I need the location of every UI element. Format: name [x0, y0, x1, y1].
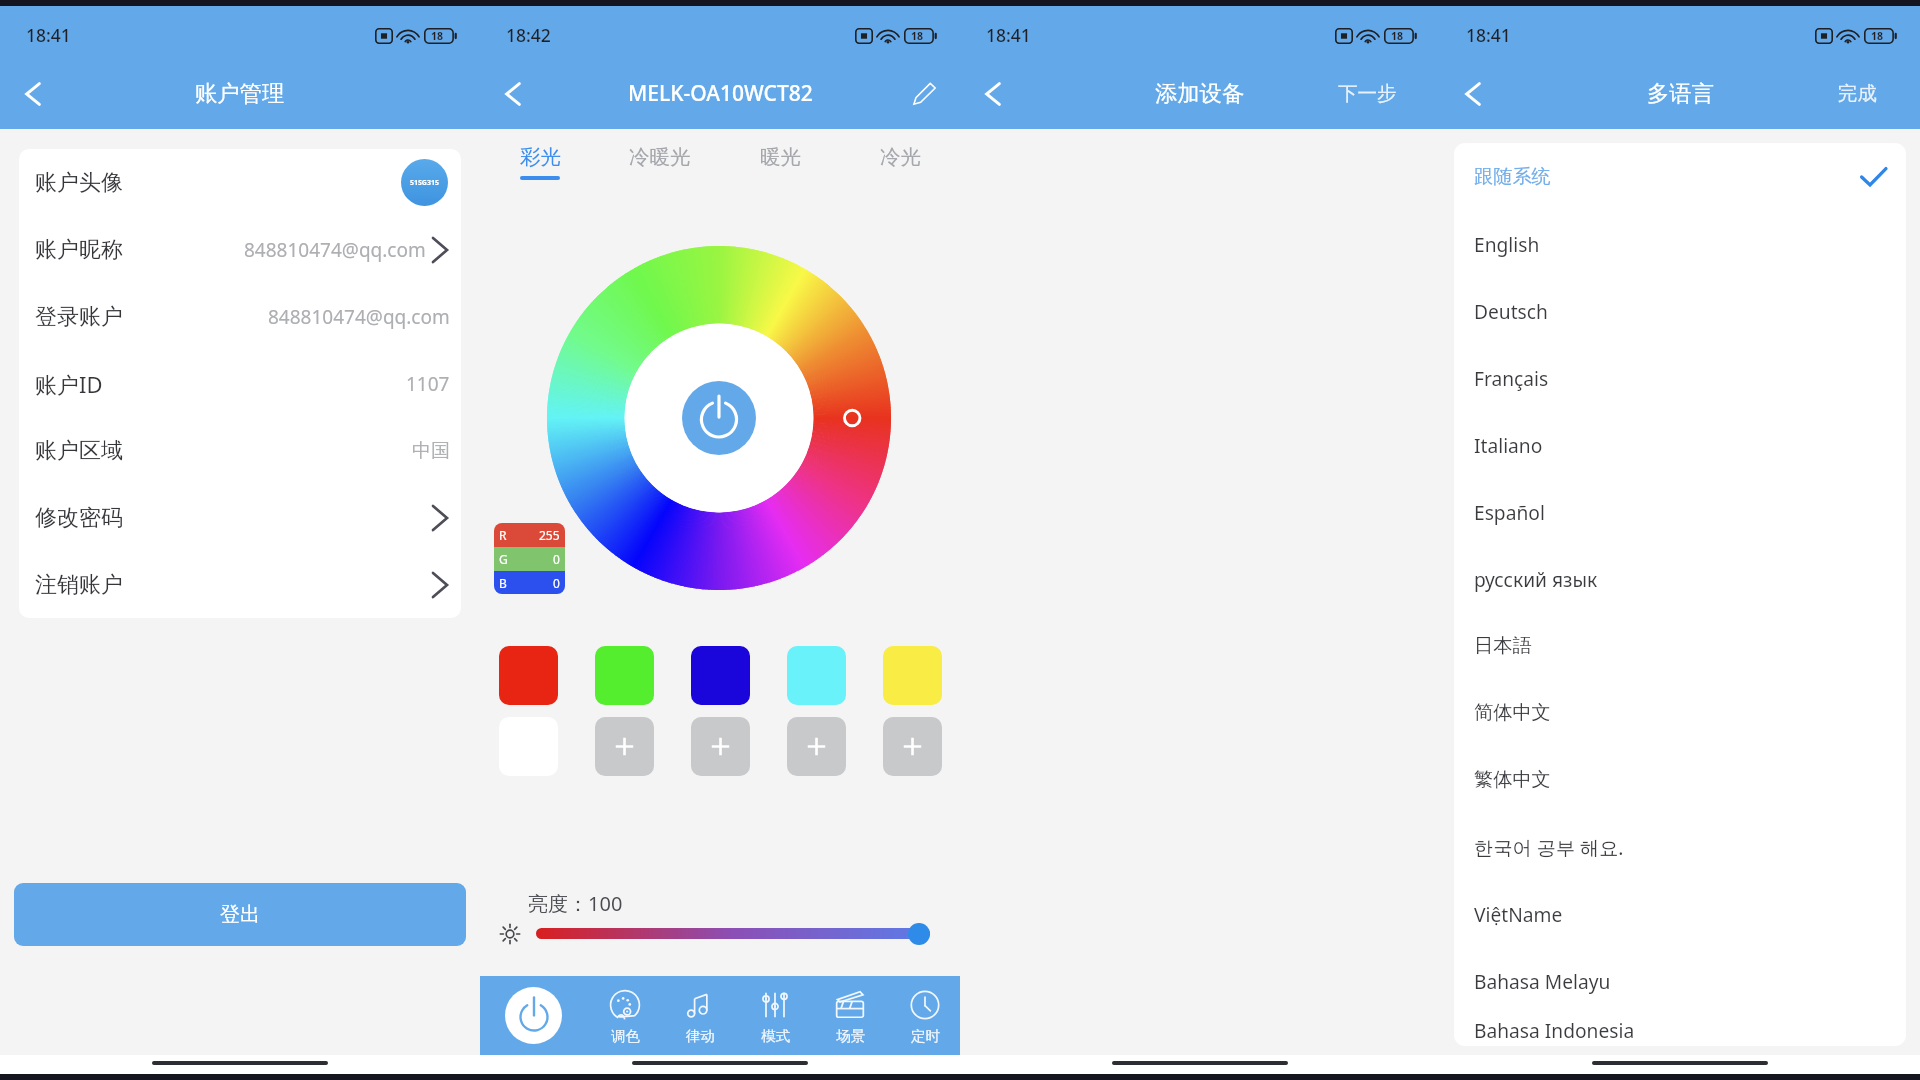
staticText: 848810474@qq.com: [244, 237, 426, 263]
staticText: 跟随系统: [1474, 165, 1551, 189]
staticText: 18: [431, 29, 444, 43]
button[interactable]: 한국어 공부 해요.: [1454, 813, 1906, 880]
staticText: 律动: [686, 1027, 715, 1045]
staticText: 多语言: [1647, 80, 1714, 108]
button[interactable]: Add colour: [691, 717, 750, 776]
staticText: 18: [1871, 29, 1884, 43]
staticText: Español: [1474, 499, 1545, 525]
staticText: 亮度：100: [528, 890, 623, 917]
staticText: 账户头像: [35, 169, 123, 197]
button[interactable]: 繁体中文: [1454, 746, 1906, 813]
button[interactable]: 暖光: [720, 129, 840, 189]
button[interactable]: 场景: [813, 976, 887, 1055]
button[interactable]: 日本語: [1454, 612, 1906, 679]
staticText: 模式: [761, 1027, 790, 1045]
button[interactable]: [499, 646, 558, 705]
staticText: Deutsch: [1474, 298, 1548, 324]
staticText: 定时: [911, 1027, 940, 1045]
staticText: 冷暖光: [629, 144, 691, 170]
staticText: 账户管理: [195, 80, 285, 108]
button[interactable]: 律动: [663, 976, 737, 1055]
staticText: 日本語: [1474, 634, 1532, 658]
button[interactable]: 注销账户: [19, 551, 461, 618]
button[interactable]: [787, 646, 846, 705]
staticText: 完成: [1838, 81, 1877, 106]
button[interactable]: 调色: [588, 976, 662, 1055]
button[interactable]: 账户ID: [19, 350, 461, 417]
button[interactable]: 冷光: [840, 129, 960, 189]
button[interactable]: 修改密码: [19, 484, 461, 551]
staticText: русский язык: [1474, 566, 1598, 592]
button[interactable]: [691, 646, 750, 705]
button[interactable]: 登出: [14, 883, 466, 946]
button[interactable]: Back: [971, 72, 1015, 116]
staticText: 1107: [406, 371, 450, 397]
staticText: 848810474@qq.com: [268, 304, 450, 330]
staticText: 18:41: [986, 23, 1031, 47]
staticText: 修改密码: [35, 504, 123, 532]
button[interactable]: Back: [11, 72, 55, 116]
button[interactable]: [595, 646, 654, 705]
button[interactable]: Edit name: [902, 72, 946, 116]
staticText: Bahasa Indonesia: [1474, 1017, 1635, 1043]
button[interactable]: 彩光: [480, 129, 600, 189]
staticText: ViệtName: [1474, 901, 1563, 927]
staticText: B: [499, 575, 507, 591]
button[interactable]: 完成: [1816, 58, 1920, 129]
button[interactable]: Bahasa Melayu: [1454, 947, 1906, 1014]
staticText: Français: [1474, 365, 1549, 391]
staticText: MELK-OA10WCT82: [628, 79, 813, 108]
staticText: 18:42: [506, 23, 551, 47]
button[interactable]: Power: [505, 987, 562, 1044]
staticText: 255: [539, 527, 560, 543]
button[interactable]: Add colour: [883, 717, 942, 776]
button[interactable]: Español: [1454, 478, 1906, 545]
button[interactable]: Italiano: [1454, 411, 1906, 478]
staticText: R: [499, 527, 507, 543]
button[interactable]: 模式: [738, 976, 812, 1055]
staticText: 한국어 공부 해요.: [1474, 834, 1624, 860]
button[interactable]: 定时: [888, 976, 962, 1055]
staticText: 登出: [220, 902, 260, 927]
staticText: 账户区域: [35, 437, 123, 465]
staticText: 账户昵称: [35, 236, 123, 264]
staticText: 场景: [836, 1027, 865, 1045]
button[interactable]: 账户昵称: [19, 216, 461, 283]
button[interactable]: Add colour: [787, 717, 846, 776]
staticText: Bahasa Melayu: [1474, 968, 1611, 994]
button[interactable]: English: [1454, 210, 1906, 277]
staticText: 账户ID: [35, 369, 103, 399]
staticText: 中国: [412, 439, 450, 463]
button[interactable]: 账户头像: [19, 149, 461, 216]
staticText: 18:41: [26, 23, 71, 47]
staticText: 0: [553, 551, 560, 567]
staticText: 调色: [611, 1027, 640, 1045]
button[interactable]: 冷暖光: [600, 129, 720, 189]
button[interactable]: Deutsch: [1454, 277, 1906, 344]
staticText: 18: [1391, 29, 1404, 43]
button[interactable]: Bahasa Indonesia: [1454, 1014, 1906, 1046]
button[interactable]: ViệtName: [1454, 880, 1906, 947]
button[interactable]: 账户区域: [19, 417, 461, 484]
staticText: 冷光: [880, 144, 921, 170]
button[interactable]: 下一步: [1316, 58, 1440, 129]
staticText: 暖光: [760, 144, 801, 170]
button[interactable]: Brightness: [908, 923, 930, 945]
staticText: G: [499, 551, 508, 567]
button[interactable]: 登录账户: [19, 283, 461, 350]
staticText: 18:41: [1466, 23, 1511, 47]
staticText: 18: [911, 29, 924, 43]
button[interactable]: Français: [1454, 344, 1906, 411]
button[interactable]: 跟随系统: [1454, 143, 1906, 210]
button[interactable]: [883, 646, 942, 705]
staticText: Italiano: [1474, 432, 1543, 458]
button[interactable]: Back: [1451, 72, 1495, 116]
staticText: 0: [553, 575, 560, 591]
staticText: 51SG315: [410, 178, 439, 188]
staticText: 繁体中文: [1474, 768, 1551, 792]
button[interactable]: Back: [491, 72, 535, 116]
button[interactable]: Add colour: [595, 717, 654, 776]
button[interactable]: 简体中文: [1454, 679, 1906, 746]
button[interactable]: русский язык: [1454, 545, 1906, 612]
